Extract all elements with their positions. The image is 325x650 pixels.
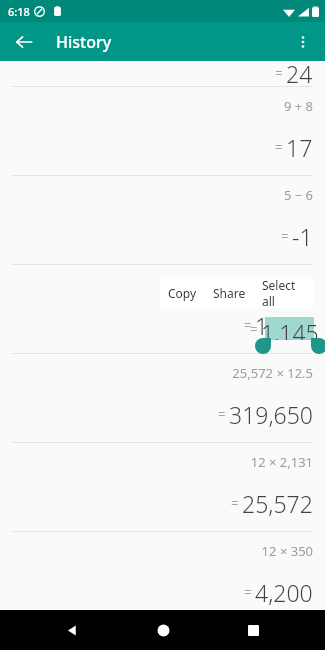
staticText: 12 × 350 (261, 542, 313, 560)
staticText: 5 − 6 (283, 186, 313, 204)
button[interactable]: 12 × 2,131 (0, 451, 325, 473)
staticText: History (56, 31, 112, 53)
button[interactable]: = (0, 310, 325, 340)
staticText: 319,650 (229, 399, 313, 429)
staticText: 24 (286, 58, 313, 88)
button[interactable]: Share (205, 277, 254, 309)
other: Selection end handle (311, 338, 325, 354)
other: Selection start handle (255, 338, 271, 354)
staticText: 1,145 (261, 317, 319, 340)
staticText: = (244, 316, 252, 334)
staticText: -1 (292, 221, 313, 251)
button[interactable]: Recent apps (237, 614, 269, 646)
button[interactable]: = (0, 132, 325, 162)
staticText: 6:18 (8, 4, 30, 19)
staticText: 4,200 (255, 577, 313, 607)
button[interactable]: = (0, 399, 325, 429)
staticText: = (275, 64, 283, 82)
button[interactable]: 12 × 350 (0, 540, 325, 562)
button[interactable]: = (0, 488, 325, 518)
button[interactable]: 25,572 × 12.5 (0, 362, 325, 384)
staticText: 25,572 (242, 488, 313, 518)
button[interactable]: Back (56, 614, 88, 646)
staticText: 25,572 × 12.5 (232, 364, 313, 382)
button[interactable]: = (0, 58, 325, 88)
button[interactable]: = (0, 221, 325, 251)
button[interactable]: Home (147, 614, 179, 646)
staticText: = (275, 138, 283, 156)
staticText: 12 × 2,131 (250, 453, 313, 471)
staticText: 765 ÷ 289 (254, 275, 313, 293)
staticText: = (218, 405, 226, 423)
button[interactable]: = (0, 577, 325, 607)
button[interactable]: 765 ÷ 289 (0, 273, 325, 295)
button[interactable]: Navigate up (8, 26, 40, 58)
button[interactable]: More options (287, 26, 319, 58)
button[interactable]: Copy (160, 277, 205, 309)
staticText: 1,145 (255, 310, 313, 340)
staticText: Share (213, 285, 246, 301)
staticText: Select all (262, 277, 305, 309)
staticText: 17 (286, 132, 313, 162)
staticText: = (281, 227, 289, 245)
staticText: = (250, 320, 258, 338)
staticText: 9 + 8 (283, 97, 313, 115)
button[interactable]: 5 − 6 (0, 184, 325, 206)
button[interactable]: Select all (254, 277, 313, 309)
button[interactable]: 9 + 8 (0, 95, 325, 117)
staticText: = (244, 583, 252, 601)
staticText: = (231, 494, 239, 512)
staticText: Copy (168, 285, 197, 301)
